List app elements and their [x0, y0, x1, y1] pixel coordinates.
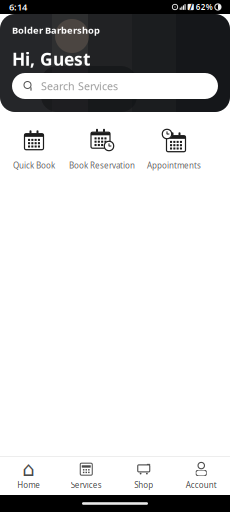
staticText: Home: [17, 480, 40, 490]
staticText: Quick Book: [13, 160, 55, 171]
staticText: ⌂: [22, 458, 35, 480]
staticText: /: [189, 2, 192, 12]
staticText: Bolder Barbershop: [12, 24, 100, 36]
button[interactable]: Account: [172, 457, 230, 495]
staticText: Search Services: [41, 79, 118, 93]
button[interactable]: Shop: [115, 457, 172, 495]
staticText: Account: [186, 480, 217, 490]
staticText: Services: [71, 480, 102, 490]
staticText: 62%: [196, 2, 213, 12]
staticText: Appointments: [147, 160, 201, 171]
button[interactable]: ⌂: [0, 457, 57, 495]
staticText: Hi, Guest: [12, 47, 91, 70]
staticText: Shop: [134, 480, 153, 490]
staticText: 6:14: [9, 1, 27, 13]
button[interactable]: Book Reservation: [69, 127, 135, 173]
staticText: Book Reservation: [69, 160, 135, 171]
button[interactable]: Services: [57, 457, 115, 495]
button[interactable]: Quick Book: [13, 127, 55, 173]
button[interactable]: Search Services: [12, 73, 218, 99]
button[interactable]: Appointments: [147, 127, 201, 173]
